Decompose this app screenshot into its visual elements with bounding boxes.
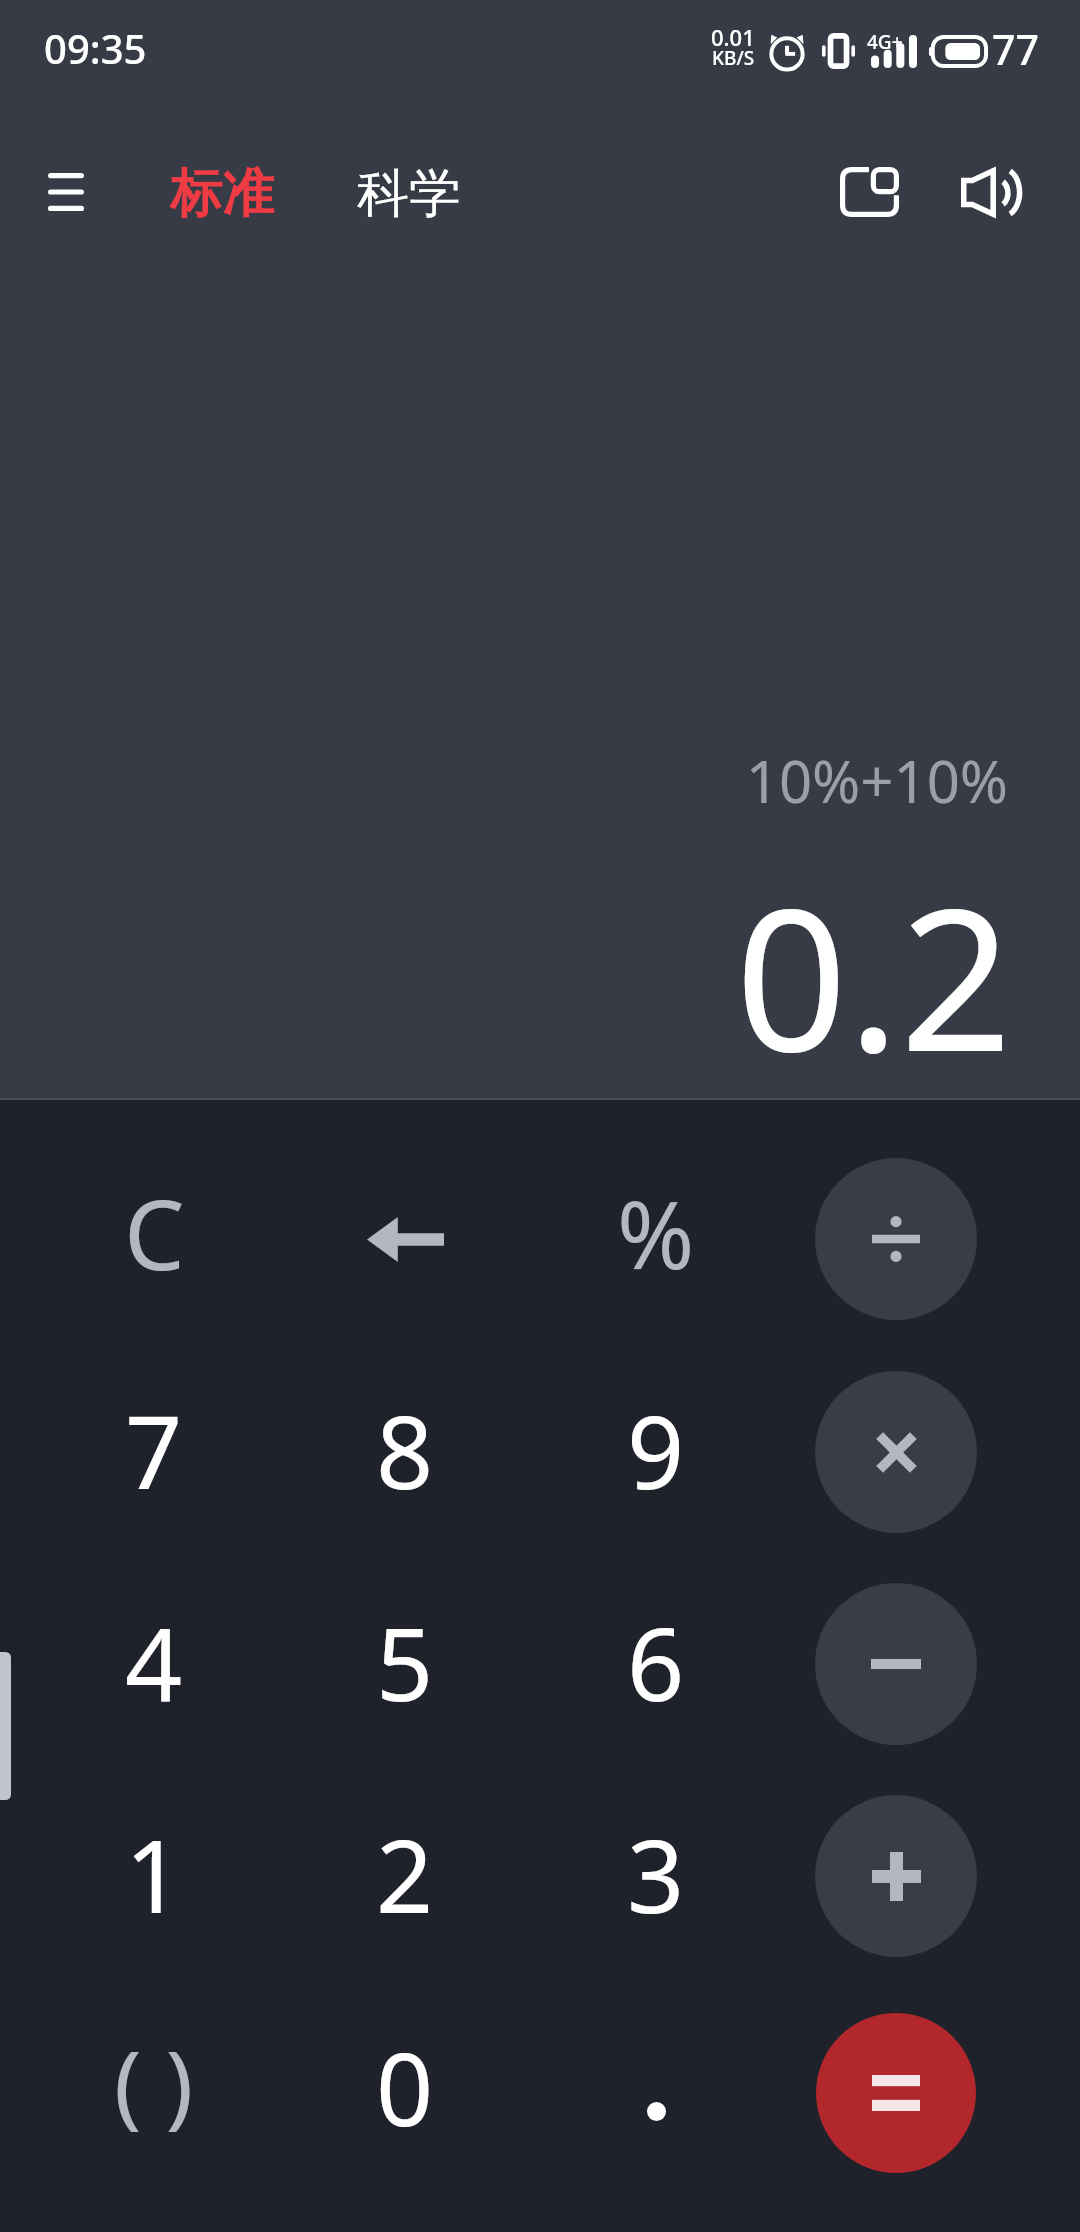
staticText: C xyxy=(124,1167,185,1298)
button[interactable]: C xyxy=(49,1127,259,1337)
button[interactable]: Divide xyxy=(815,1158,977,1320)
button[interactable]: % xyxy=(551,1128,761,1338)
staticText: KB/S xyxy=(712,45,755,71)
staticText: 8 xyxy=(376,1382,434,1518)
staticText: 6 xyxy=(627,1594,685,1730)
button[interactable]: Sound xyxy=(942,144,1038,240)
staticText: 4G+ xyxy=(867,29,903,55)
staticText: % xyxy=(617,1170,695,1297)
button[interactable]: ( ) xyxy=(49,1977,259,2187)
staticText: 9 xyxy=(627,1382,685,1518)
staticText: 10%+10% xyxy=(0,741,1008,820)
button[interactable]: 1 xyxy=(49,1769,259,1979)
button[interactable]: 7 xyxy=(49,1345,259,1555)
button[interactable]: 5 xyxy=(300,1557,510,1767)
staticText: 科学 xyxy=(357,161,461,227)
button[interactable]: Plus xyxy=(815,1795,977,1957)
button[interactable]: 标准 xyxy=(158,146,286,242)
button[interactable]: 2 xyxy=(300,1769,510,1979)
staticText: 2 xyxy=(376,1806,434,1942)
button[interactable]: 0 xyxy=(300,1982,510,2192)
button[interactable]: 6 xyxy=(551,1557,761,1767)
staticText: 4 xyxy=(125,1594,183,1730)
button[interactable]: 3 xyxy=(551,1769,761,1979)
staticText: 1 xyxy=(125,1806,183,1942)
button[interactable]: 4 xyxy=(49,1557,259,1767)
staticText: 0 xyxy=(376,2019,434,2155)
button[interactable]: 8 xyxy=(300,1345,510,1555)
staticText: 77 xyxy=(992,21,1039,77)
button[interactable]: 科学 xyxy=(345,146,473,242)
staticText: ( ) xyxy=(114,2020,194,2145)
staticText: 0.2 xyxy=(0,841,1012,1108)
staticText: 标准 xyxy=(170,161,274,227)
button[interactable]: 9 xyxy=(551,1345,761,1555)
staticText: 5 xyxy=(376,1594,434,1730)
staticText: 7 xyxy=(125,1382,183,1518)
staticText: 0.01 xyxy=(711,22,755,52)
button[interactable]: Floating window xyxy=(821,144,917,240)
button[interactable]: Decimal point xyxy=(551,2006,761,2216)
button[interactable]: Equals xyxy=(816,2013,976,2173)
button[interactable]: Multiply xyxy=(815,1371,977,1533)
staticText: 3 xyxy=(627,1806,685,1942)
button[interactable]: Menu xyxy=(18,144,114,240)
staticText: 09:35 xyxy=(44,21,147,75)
button[interactable]: Backspace xyxy=(300,1134,510,1344)
button[interactable]: Minus xyxy=(815,1583,977,1745)
